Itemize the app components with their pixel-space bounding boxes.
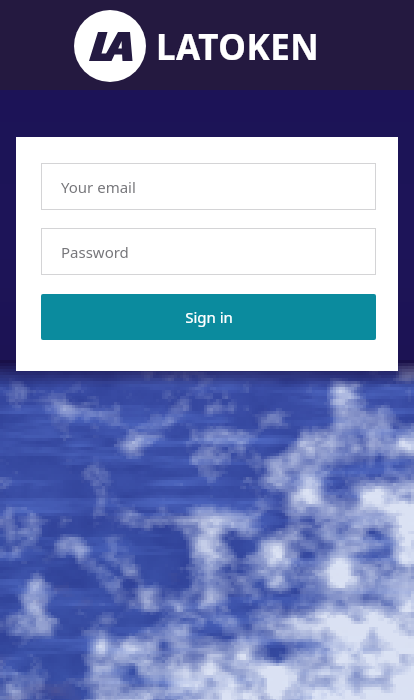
button[interactable]: Password [41, 228, 376, 275]
button[interactable]: LATOKEN home [0, 0, 414, 90]
staticText: LATOKEN [156, 23, 320, 71]
staticText: Your email [61, 177, 136, 197]
button[interactable]: Sign in [41, 294, 376, 340]
staticText: Password [61, 242, 129, 262]
button[interactable]: Your email [41, 163, 376, 210]
staticText: Sign in [185, 307, 233, 327]
